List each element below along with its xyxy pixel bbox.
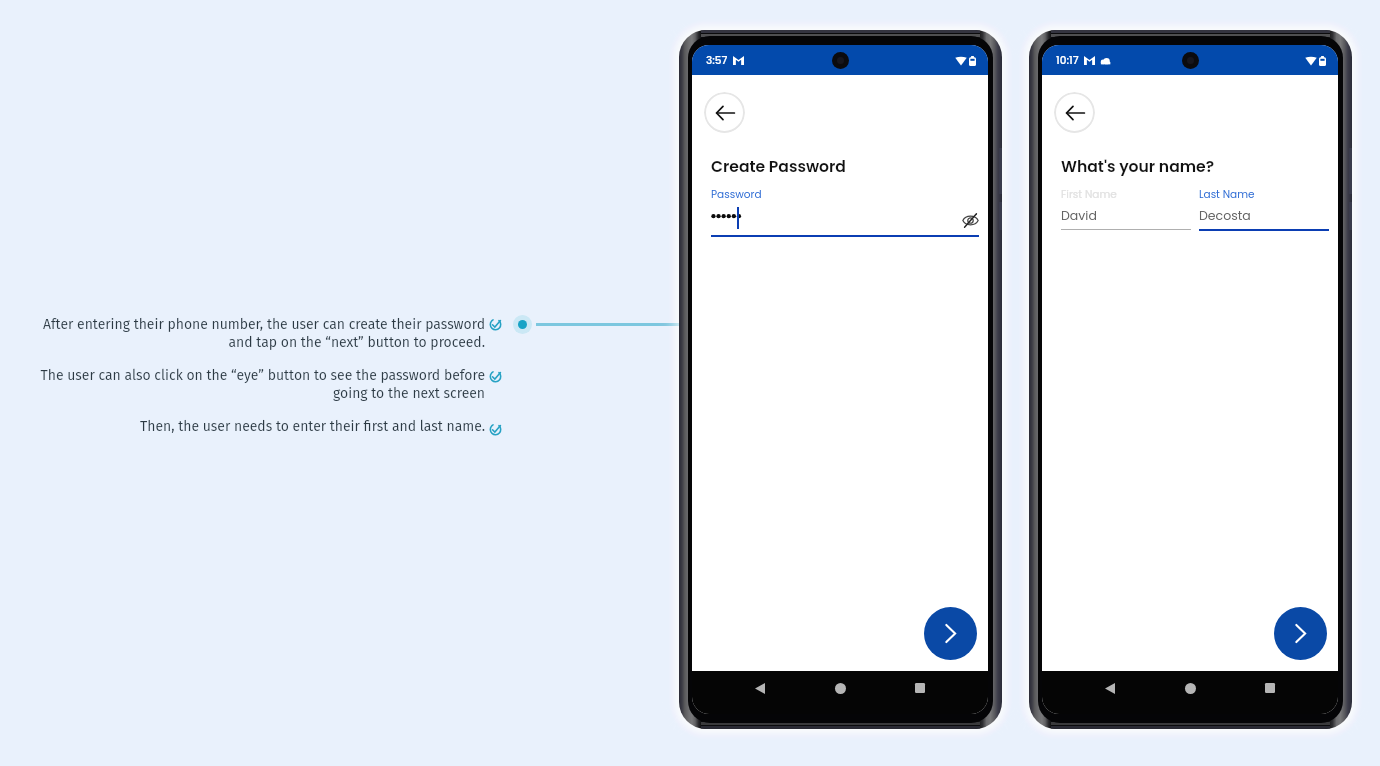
button[interactable]: Home	[824, 672, 856, 704]
button[interactable]: Back	[744, 672, 776, 704]
staticText: Last Name	[1199, 187, 1255, 202]
button[interactable]: Back	[1054, 92, 1095, 133]
button[interactable]: Next	[924, 607, 977, 660]
staticText: The user can also click on the “eye” but…	[40, 367, 485, 402]
staticText: After entering their phone number, the u…	[42, 316, 485, 351]
button[interactable]: Next	[1274, 607, 1327, 660]
staticText: Password	[711, 187, 762, 202]
staticText: Create Password	[711, 156, 846, 178]
staticText: First Name	[1061, 187, 1117, 202]
button[interactable]: Recent apps	[904, 672, 936, 704]
staticText: 3:57	[706, 53, 728, 68]
button[interactable]: Recent apps	[1254, 672, 1286, 704]
staticText: 10:17	[1056, 53, 1079, 68]
staticText: What's your name?	[1061, 156, 1215, 178]
staticText: Then, the user needs to enter their firs…	[140, 418, 485, 435]
button[interactable]: Back	[704, 92, 745, 133]
button[interactable]: Back	[1094, 672, 1126, 704]
button[interactable]: Home	[1174, 672, 1206, 704]
staticText: Decosta	[1199, 207, 1251, 224]
staticText: David	[1061, 207, 1097, 224]
button[interactable]: Show password	[961, 211, 979, 229]
